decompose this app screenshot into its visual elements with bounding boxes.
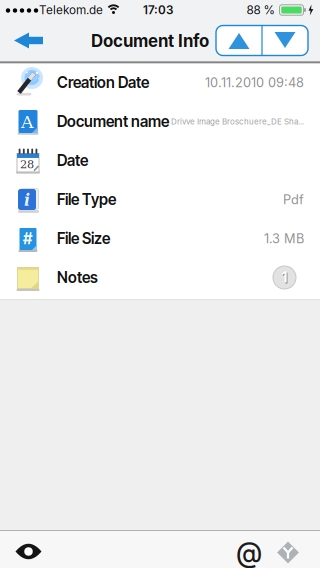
button[interactable]: Previous document xyxy=(227,26,251,54)
staticText: Document Info xyxy=(91,31,209,51)
staticText: Pdf xyxy=(283,192,304,207)
staticText: @ xyxy=(236,536,262,568)
staticText: i xyxy=(24,191,30,209)
staticText: Notes xyxy=(57,268,98,287)
button[interactable]: Preview document xyxy=(15,543,41,559)
staticText: 10.11.2010 09:48 xyxy=(205,75,304,90)
staticText: Document name xyxy=(57,112,169,131)
staticText: Creation Date xyxy=(57,73,149,92)
staticText: Telekom.de xyxy=(39,3,103,17)
staticText: Date xyxy=(57,151,88,170)
staticText: 1 xyxy=(282,270,288,287)
button[interactable]: # xyxy=(0,219,320,258)
staticText: 17:03 xyxy=(143,3,173,17)
button[interactable]: A xyxy=(0,102,320,141)
staticText: # xyxy=(23,229,33,248)
staticText: 1.3 MB xyxy=(264,231,304,246)
button[interactable]: Next document xyxy=(273,26,297,54)
button[interactable]: Send by email xyxy=(236,536,262,568)
staticText: A xyxy=(21,112,34,132)
staticText: 88 % xyxy=(246,3,275,17)
staticText: Drivve Image Broschuere_DE Sha... xyxy=(171,117,304,126)
staticText: 28 xyxy=(20,158,34,171)
button[interactable]: Workflow xyxy=(277,541,299,563)
button[interactable]: Notes xyxy=(0,258,320,297)
staticText: 1 xyxy=(281,269,287,286)
staticText: File Type xyxy=(57,190,116,209)
button[interactable]: Back xyxy=(8,28,49,53)
button[interactable]: i xyxy=(0,180,320,219)
button[interactable]: 28 xyxy=(0,141,320,180)
button[interactable]: Creation Date xyxy=(0,63,320,102)
staticText: File Size xyxy=(57,229,110,248)
